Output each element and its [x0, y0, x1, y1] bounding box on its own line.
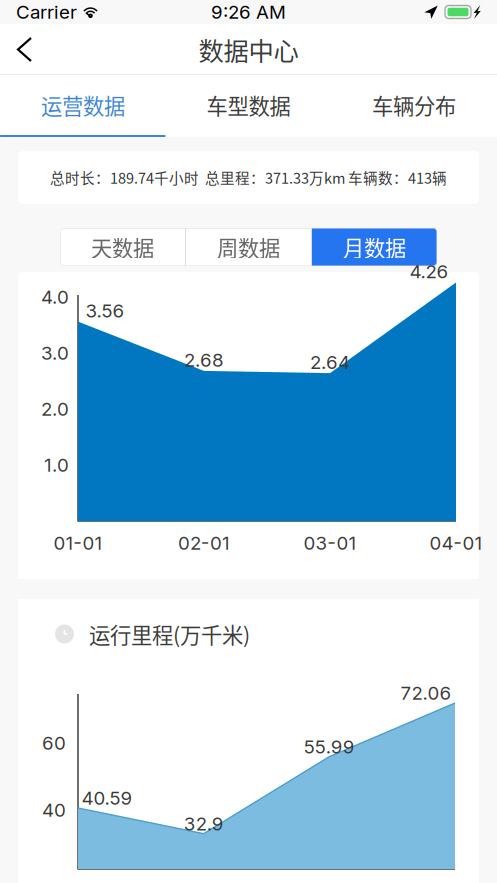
button[interactable]: 运营数据 [0, 75, 166, 137]
staticText: 72.06 [400, 682, 451, 704]
staticText: 车辆分布 [372, 90, 456, 120]
button[interactable]: 车型数据 [166, 75, 331, 137]
staticText: 32.9 [184, 812, 224, 835]
staticText: 40 [42, 799, 66, 821]
staticText: 55.99 [304, 735, 355, 758]
staticText: 3.0 [41, 342, 69, 364]
staticText: 车型数据 [206, 90, 290, 120]
button[interactable]: 车辆分布 [331, 75, 497, 137]
staticText: 2.64 [310, 351, 350, 373]
staticText: 9:26 AM [211, 1, 286, 23]
staticText: 2.0 [41, 398, 69, 420]
staticText: 40.59 [81, 787, 132, 809]
staticText: 运营数据 [41, 90, 125, 120]
staticText: 04-01 [429, 532, 482, 554]
button[interactable]: 月数据 [312, 228, 437, 266]
staticText: 总时长：189.74千小时 总里程：371.33万km 车辆数：413辆 [50, 167, 447, 188]
staticText: 天数据 [91, 232, 154, 262]
staticText: 1.0 [44, 454, 69, 476]
staticText: 01-01 [53, 532, 102, 554]
button[interactable]: Back [0, 26, 49, 73]
staticText: 4.26 [409, 260, 448, 283]
staticText: Carrier [16, 1, 77, 23]
staticText: 数据中心 [198, 31, 298, 68]
staticText: 4.0 [41, 286, 69, 308]
staticText: 02-01 [178, 532, 230, 554]
button[interactable]: 天数据 [60, 228, 185, 266]
staticText: 3.56 [85, 299, 124, 322]
staticText: 月数据 [343, 232, 406, 262]
staticText: 周数据 [217, 232, 280, 262]
staticText: 03-01 [303, 532, 356, 554]
staticText: 2.68 [184, 349, 224, 371]
staticText: 运行里程(万千米) [89, 619, 250, 649]
button[interactable]: 周数据 [186, 228, 311, 266]
staticText: 60 [42, 732, 66, 754]
